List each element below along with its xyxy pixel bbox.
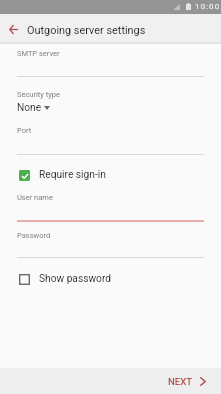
button[interactable]: None: [17, 102, 50, 114]
button[interactable]: Require sign-in: [0, 164, 221, 186]
button[interactable]: User name: [17, 193, 53, 202]
button[interactable]: Navigate up: [0, 14, 26, 44]
button[interactable]: NEXT: [154, 371, 221, 392]
button[interactable]: Security type: [17, 90, 60, 99]
staticText: None: [17, 102, 42, 114]
staticText: NEXT: [168, 376, 193, 387]
staticText: Require sign-in: [39, 169, 106, 181]
staticText: 10:00: [195, 2, 221, 11]
button[interactable]: Show password: [0, 268, 221, 290]
button[interactable]: Password: [17, 231, 51, 240]
staticText: Show password: [39, 273, 111, 285]
button[interactable]: SMTP server: [17, 49, 60, 58]
button[interactable]: Port: [17, 126, 32, 135]
staticText: Outgoing server settings: [27, 24, 146, 37]
